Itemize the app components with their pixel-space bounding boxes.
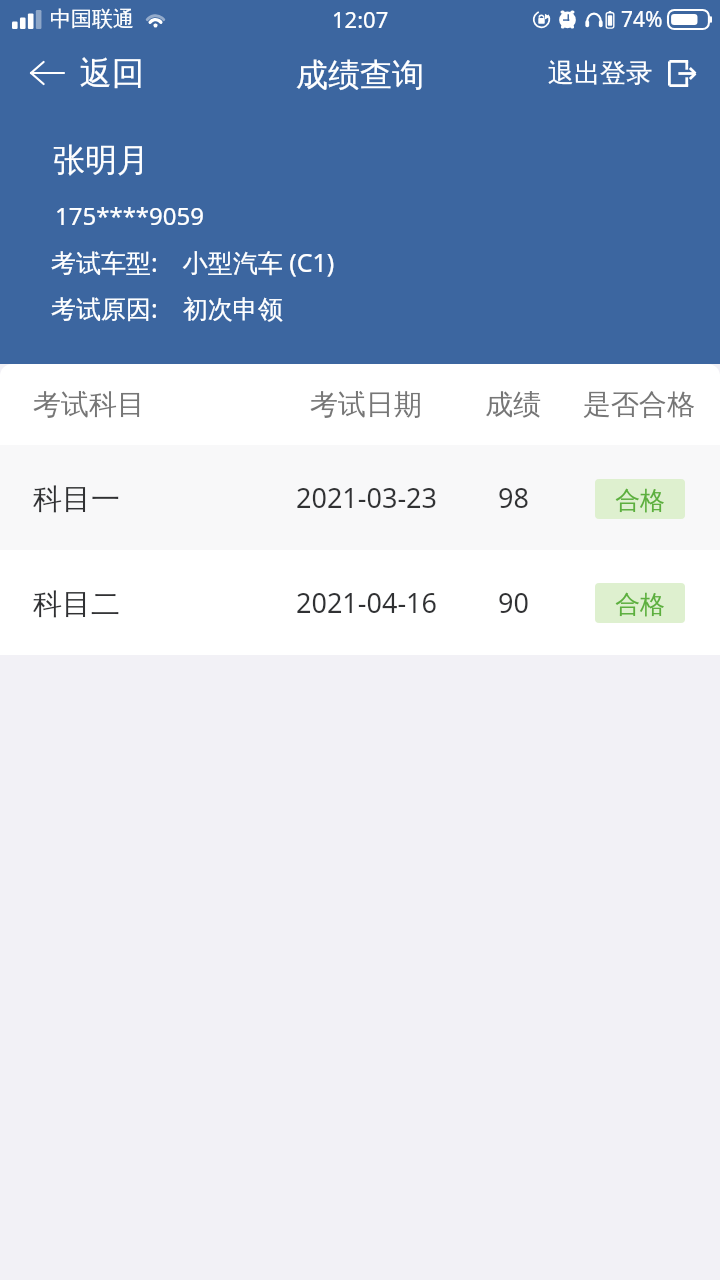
- staticText: 成绩查询: [296, 55, 424, 95]
- staticText: 考试科目: [33, 387, 145, 422]
- staticText: 2021-04-16: [296, 584, 437, 621]
- staticText: 12:07: [332, 4, 389, 34]
- other: 退出登录: [668, 60, 696, 87]
- staticText: 合格: [615, 485, 665, 516]
- staticText: 张明月: [53, 140, 149, 180]
- staticText: 98: [498, 479, 529, 516]
- staticText: 科目二: [33, 586, 120, 623]
- other: 返回: [30, 61, 64, 85]
- staticText: 考试原因: 初次申领: [51, 291, 283, 325]
- staticText: 中国联通: [50, 6, 134, 32]
- staticText: 考试车型: 小型汽车 (C1): [51, 245, 335, 279]
- staticText: 2021-03-23: [296, 479, 437, 516]
- staticText: 90: [498, 584, 529, 621]
- button[interactable]: 科目二: [0, 550, 720, 654]
- button[interactable]: 退出登录: [530, 47, 720, 100]
- staticText: 是否合格: [583, 387, 695, 422]
- staticText: 退出登录: [548, 57, 652, 90]
- staticText: 成绩: [485, 387, 541, 422]
- staticText: 74%: [621, 5, 663, 34]
- button[interactable]: 科目一: [0, 445, 720, 550]
- staticText: 合格: [615, 589, 665, 620]
- staticText: 175****9059: [55, 199, 204, 232]
- staticText: 科目一: [33, 481, 120, 518]
- button[interactable]: 返回: [0, 43, 162, 103]
- staticText: 返回: [80, 53, 144, 93]
- staticText: 考试日期: [310, 387, 422, 422]
